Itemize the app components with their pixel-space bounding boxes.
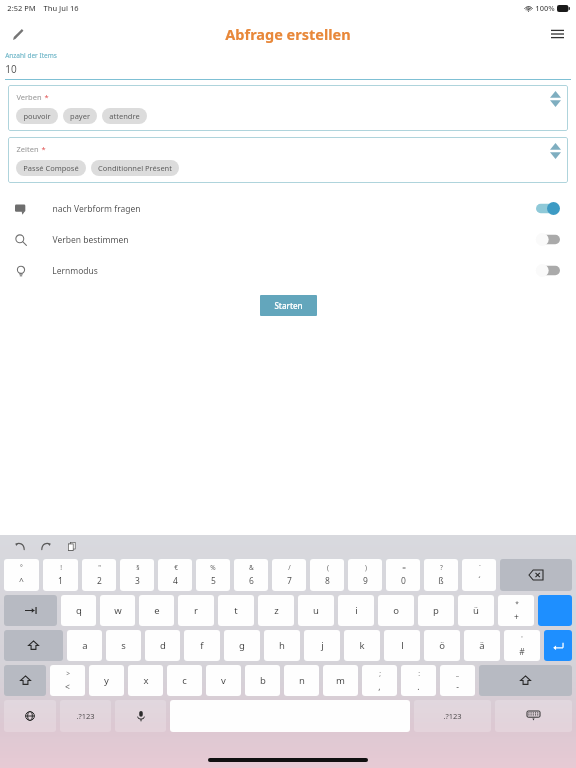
button[interactable]: Passé Composé (16, 160, 86, 176)
button[interactable]: r (178, 595, 214, 626)
staticText: payer (70, 111, 90, 121)
button[interactable]: shift (4, 630, 63, 661)
button[interactable]: Redo (38, 538, 54, 554)
button[interactable] (536, 264, 560, 277)
button[interactable]: kb (495, 700, 572, 732)
button[interactable]: shift (4, 665, 46, 696)
button[interactable]: Open Verben (550, 91, 561, 107)
staticText: 4 (173, 575, 178, 587)
button[interactable]: & (234, 559, 268, 591)
button[interactable]: a (67, 630, 102, 661)
button[interactable]: ! (43, 559, 78, 591)
button[interactable]: > (50, 665, 85, 696)
button[interactable]: d (145, 630, 180, 661)
staticText: Anzahl der Items (5, 51, 57, 60)
button[interactable]: f (184, 630, 220, 661)
button[interactable]: Paste (64, 538, 80, 554)
staticText: 0 (401, 575, 406, 587)
button[interactable]: 10 (5, 62, 571, 76)
staticText: f (200, 639, 204, 652)
button[interactable]: Conditionnel Présent (91, 160, 179, 176)
button[interactable]: Open Zeiten (550, 143, 561, 159)
button[interactable]: ? (424, 559, 458, 591)
button[interactable]: globe (4, 700, 56, 732)
button[interactable]: t (218, 595, 254, 626)
button[interactable]: b (245, 665, 280, 696)
button[interactable]: Menu (544, 21, 570, 47)
button[interactable]: .?123 (60, 700, 111, 732)
button[interactable]: * (498, 595, 534, 626)
button[interactable]: Starten (260, 295, 317, 316)
button[interactable]: ä (464, 630, 500, 661)
staticText: x (143, 674, 149, 687)
button[interactable]: p (418, 595, 454, 626)
button[interactable]: Lernmodus (0, 255, 576, 286)
button[interactable]: m (323, 665, 358, 696)
button[interactable]: shift2 (479, 665, 572, 696)
button[interactable]: l (384, 630, 420, 661)
button[interactable]: e (139, 595, 174, 626)
button[interactable]: pouvoir (16, 108, 58, 124)
button[interactable]: : (401, 665, 436, 696)
button[interactable]: s (106, 630, 141, 661)
staticText: ä (479, 639, 485, 652)
button[interactable]: q (61, 595, 96, 626)
button[interactable]: o (378, 595, 414, 626)
staticText: pouvoir (23, 111, 51, 121)
staticText: v (221, 674, 226, 687)
button[interactable]: y (89, 665, 124, 696)
button[interactable]: j (304, 630, 340, 661)
staticText: , (378, 681, 381, 693)
button[interactable]: n (284, 665, 319, 696)
button[interactable]: _ (440, 665, 475, 696)
button[interactable]: g (224, 630, 260, 661)
button[interactable]: = (386, 559, 420, 591)
button[interactable]: nach Verbform fragen (0, 193, 576, 224)
button[interactable]: tab (4, 595, 57, 626)
button[interactable]: Zeiten (8, 137, 568, 183)
button[interactable]: / (272, 559, 306, 591)
button[interactable] (536, 233, 560, 246)
button[interactable]: € (158, 559, 192, 591)
staticText: : (418, 669, 420, 678)
button[interactable]: i (338, 595, 374, 626)
button[interactable] (536, 202, 560, 215)
button[interactable]: h (264, 630, 300, 661)
button[interactable]: Verben (8, 85, 568, 131)
button[interactable]: ; (362, 665, 397, 696)
button[interactable]: w (100, 595, 135, 626)
button[interactable]: ) (348, 559, 382, 591)
button[interactable] (538, 595, 572, 626)
button[interactable]: payer (63, 108, 97, 124)
button[interactable]: x (128, 665, 163, 696)
button[interactable]: z (258, 595, 294, 626)
button[interactable]: ` (462, 559, 496, 591)
button[interactable]: .?123 (414, 700, 491, 732)
staticText: ! (60, 563, 62, 572)
button[interactable]: § (120, 559, 154, 591)
button[interactable]: k (344, 630, 380, 661)
button[interactable]: ( (310, 559, 344, 591)
staticText: w (114, 604, 122, 617)
button[interactable]: " (82, 559, 116, 591)
staticText: 8 (325, 575, 330, 587)
button[interactable]: attendre (102, 108, 147, 124)
button[interactable]: ö (424, 630, 460, 661)
button[interactable]: ' (504, 630, 540, 661)
button[interactable]: v (206, 665, 241, 696)
button[interactable]: Verben bestimmen (0, 224, 576, 255)
button[interactable]: del (500, 559, 572, 591)
button[interactable]: ° (4, 559, 39, 591)
staticText: - (456, 681, 459, 693)
button[interactable]: mic (115, 700, 166, 732)
button[interactable]: Edit (6, 22, 30, 46)
staticText: 3 (135, 575, 140, 587)
button[interactable]: ü (458, 595, 494, 626)
button[interactable]: % (196, 559, 230, 591)
staticText: j (321, 639, 324, 652)
button[interactable]: c (167, 665, 202, 696)
button[interactable]: enter (544, 630, 572, 661)
button[interactable]: Undo (12, 538, 28, 554)
button[interactable]: u (298, 595, 334, 626)
